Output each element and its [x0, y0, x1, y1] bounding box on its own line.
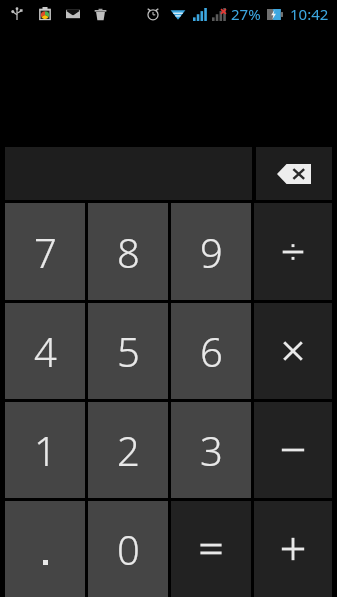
- button[interactable]: [5, 501, 85, 597]
- staticText: 3: [200, 423, 223, 477]
- staticText: 0: [117, 522, 140, 576]
- button[interactable]: [171, 501, 251, 597]
- staticText: 10:42: [290, 4, 329, 24]
- staticText: 5: [117, 324, 140, 378]
- button[interactable]: 1: [5, 402, 85, 498]
- button[interactable]: 6: [171, 303, 251, 399]
- button[interactable]: 9: [171, 203, 251, 300]
- staticText: 1: [34, 423, 57, 477]
- button[interactable]: 0: [88, 501, 168, 597]
- button[interactable]: [254, 303, 332, 399]
- staticText: 6: [200, 324, 223, 378]
- button[interactable]: Delete: [256, 147, 332, 200]
- button[interactable]: [254, 402, 332, 498]
- button[interactable]: 2: [88, 402, 168, 498]
- button[interactable]: [254, 203, 332, 300]
- button[interactable]: 7: [5, 203, 85, 300]
- button[interactable]: 8: [88, 203, 168, 300]
- button[interactable]: 5: [88, 303, 168, 399]
- staticText: 9: [200, 225, 223, 279]
- staticText: 2: [117, 423, 140, 477]
- staticText: 8: [117, 225, 140, 279]
- staticText: 7: [34, 225, 57, 279]
- staticText: 4: [34, 324, 57, 378]
- button[interactable]: 3: [171, 402, 251, 498]
- button[interactable]: [254, 501, 332, 597]
- button[interactable]: 4: [5, 303, 85, 399]
- staticText: 27%: [231, 4, 261, 24]
